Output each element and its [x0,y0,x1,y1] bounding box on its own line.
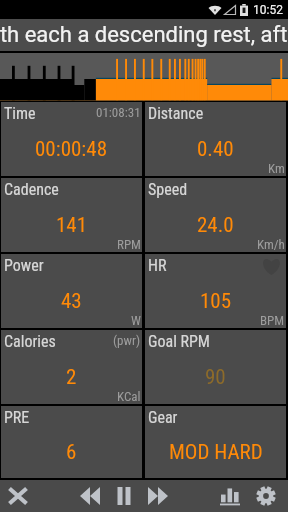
button[interactable]: Fast forward [143,480,173,512]
button[interactable]: Time [1,102,142,176]
button[interactable]: Stop [3,480,33,512]
button[interactable]: Pause [109,480,139,512]
button[interactable]: Statistics [215,480,245,512]
staticText: 01:08:31 [96,105,141,120]
staticText: Speed [148,180,188,199]
staticText: BPM [260,313,285,328]
staticText: Power [4,256,44,275]
staticText: 43 [61,289,82,314]
staticText: Goal RPM [148,332,210,351]
staticText: Gear [148,408,178,427]
button[interactable]: Distance [145,102,286,176]
button[interactable]: Cadence [1,178,142,252]
button[interactable]: PRE [1,406,142,478]
staticText: RPM [117,237,141,252]
staticText: with each a descending rest, after [0,22,288,48]
staticText: Cadence [4,180,59,199]
staticText: Km/h [257,237,285,252]
staticText: 10:52 [253,3,283,17]
staticText: 24.0 [197,213,234,238]
staticText: 6 [66,440,77,465]
staticText: HR [148,256,167,275]
staticText: 90 [205,365,226,390]
staticText: PRE [4,408,30,427]
staticText: Km [268,161,285,176]
button[interactable]: HR [145,254,286,328]
staticText: (pwr) [113,333,141,348]
staticText: 2 [66,365,77,390]
button[interactable]: Goal RPM [145,330,286,404]
staticText: 0.40 [197,137,234,162]
staticText: W [131,313,141,328]
staticText: KCal [117,389,141,404]
button[interactable]: Rewind [75,480,105,512]
button[interactable]: Power [1,254,142,328]
button[interactable]: Calories [1,330,142,404]
staticText: 00:00:48 [35,137,108,162]
staticText: 141 [56,213,88,238]
button[interactable]: Gear [145,406,286,478]
staticText: 105 [200,289,232,314]
button[interactable]: Settings [251,480,281,512]
staticText: Distance [148,104,204,123]
button[interactable]: Speed [145,178,286,252]
staticText: Calories [4,332,56,351]
staticText: Time [4,104,36,123]
staticText: MOD HARD [169,440,263,465]
